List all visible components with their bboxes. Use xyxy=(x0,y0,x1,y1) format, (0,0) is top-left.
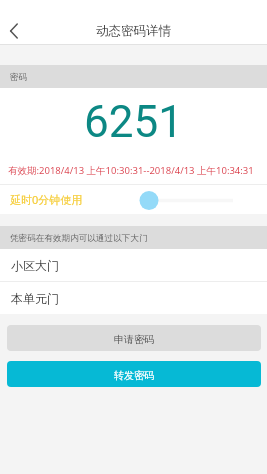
button[interactable]: 申请密码 xyxy=(7,325,261,351)
staticText: 本单元门 xyxy=(11,291,59,306)
staticText: 有效期:2018/4/13 上午10:30:31--2018/4/13 上午10… xyxy=(8,164,254,177)
staticText: 凭密码在有效期内可以通过以下大门 xyxy=(10,233,148,244)
button[interactable]: 转发密码 xyxy=(7,361,261,387)
staticText: 申请密码 xyxy=(114,333,154,346)
staticText: 小区大门 xyxy=(11,258,59,273)
staticText: 转发密码 xyxy=(114,369,154,382)
staticText: 6251 xyxy=(84,96,183,148)
staticText: 密码 xyxy=(10,72,28,83)
button[interactable]: Delay minutes slider xyxy=(129,185,233,214)
button[interactable]: 本单元门 xyxy=(0,282,267,314)
staticText: 动态密码详情 xyxy=(96,23,171,39)
staticText: 延时0分钟使用 xyxy=(10,192,83,207)
button[interactable]: 小区大门 xyxy=(0,249,267,281)
button[interactable]: Back xyxy=(0,17,27,44)
